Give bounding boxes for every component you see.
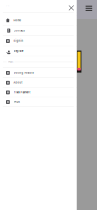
- button[interactable]: Close menu: [67, 3, 76, 12]
- button[interactable]: About: [0, 78, 76, 87]
- button[interactable]: Voting History: [0, 68, 76, 78]
- button[interactable]: FAQs: [0, 97, 76, 107]
- button[interactable]: Signin: [0, 36, 76, 46]
- staticText: Voting History: [14, 71, 34, 74]
- button[interactable]: Register: [0, 46, 76, 56]
- button[interactable]: Home: [0, 15, 76, 25]
- staticText: PAGES: [8, 61, 13, 63]
- button[interactable]: Contacts: [0, 26, 76, 36]
- staticText: Register: [14, 50, 24, 53]
- staticText: Contacts: [14, 29, 25, 32]
- staticText: Home: [14, 19, 21, 22]
- staticText: Track Payment: [14, 91, 31, 94]
- button[interactable]: Track Payment: [0, 88, 76, 97]
- staticText: About: [14, 81, 23, 84]
- staticText: Signin: [14, 39, 24, 42]
- staticText: FAQs: [14, 100, 20, 103]
